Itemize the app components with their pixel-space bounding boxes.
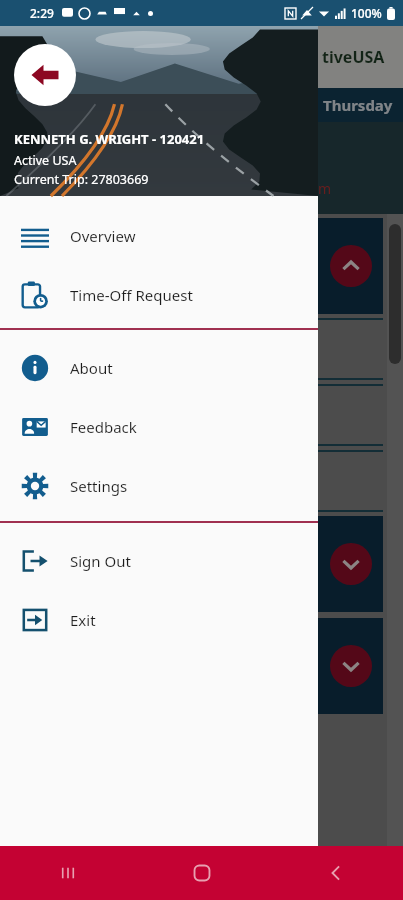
button[interactable]: Collapse xyxy=(330,245,372,287)
button[interactable]: Overview xyxy=(0,206,318,265)
button[interactable]: Expand xyxy=(0,618,383,714)
button[interactable]: Feedback xyxy=(0,397,318,456)
button[interactable]: Time-Off Request xyxy=(0,265,318,324)
staticText: Exit xyxy=(70,610,96,630)
button[interactable]: Exit xyxy=(0,590,318,649)
button[interactable]: Expand xyxy=(330,543,372,585)
staticText: m xyxy=(318,179,332,198)
button[interactable]: Recents xyxy=(0,846,135,900)
staticText: Sign Out xyxy=(70,551,131,571)
staticText: KENNETH G. WRIGHT - 120421 xyxy=(14,130,205,148)
button[interactable]: Back xyxy=(14,44,76,106)
button[interactable]: Expand xyxy=(330,645,372,687)
button[interactable] xyxy=(0,450,383,512)
staticText: Active USA xyxy=(14,152,77,169)
button[interactable] xyxy=(0,318,383,380)
button[interactable]: Sign Out xyxy=(0,531,318,590)
staticText: Time-Off Request xyxy=(70,285,193,305)
staticText: About xyxy=(70,358,113,378)
staticText: tiveUSA xyxy=(322,46,385,68)
button[interactable]: Expand xyxy=(0,516,383,612)
staticText: Settings xyxy=(70,476,128,496)
button[interactable] xyxy=(0,384,383,446)
button[interactable]: Home xyxy=(135,846,269,900)
button[interactable]: Collapse xyxy=(0,218,383,314)
staticText: Current Trip: 27803669 xyxy=(14,171,149,188)
staticText: Feedback xyxy=(70,417,137,437)
staticText: 100% xyxy=(351,5,382,21)
button[interactable]: Settings xyxy=(0,456,318,515)
button[interactable]: Back xyxy=(269,846,403,900)
staticText: Overview xyxy=(70,226,136,246)
staticText: 2:29 xyxy=(30,5,54,21)
staticText: Thursday xyxy=(323,95,393,115)
button[interactable]: About xyxy=(0,338,318,397)
